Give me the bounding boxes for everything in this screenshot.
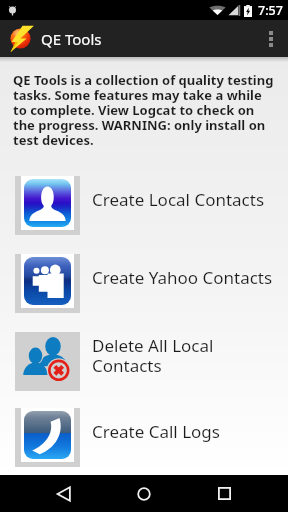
staticText: Create Local Contacts	[92, 188, 265, 211]
button[interactable]: Recents	[200, 475, 248, 512]
button[interactable]: Delete All Local Contacts	[0, 322, 288, 400]
staticText: 7:57	[258, 2, 283, 19]
button[interactable]: Home	[120, 475, 168, 512]
staticText: Create Call Logs	[92, 420, 220, 443]
button[interactable]: More options	[254, 20, 288, 57]
staticText: QE Tools	[41, 29, 102, 49]
button[interactable]: Create Call Logs	[0, 400, 288, 475]
button[interactable]: Create Local Contacts	[0, 166, 288, 244]
staticText: Create Yahoo Contacts	[92, 266, 273, 289]
staticText: QE Tools is a collection of quality test…	[13, 71, 275, 149]
button[interactable]: Create Yahoo Contacts	[0, 244, 288, 322]
button[interactable]: Back	[40, 475, 88, 512]
staticText: Delete All Local Contacts	[92, 334, 214, 377]
